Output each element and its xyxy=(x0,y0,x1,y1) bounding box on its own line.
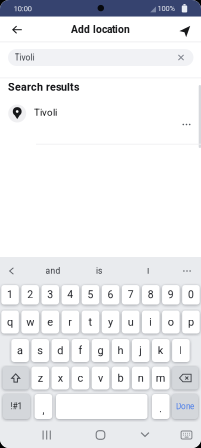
button[interactable] xyxy=(178,118,194,130)
button[interactable]: 4 xyxy=(62,285,79,305)
staticText: Done xyxy=(176,402,194,411)
staticText: 3 xyxy=(47,289,53,301)
button[interactable]: c xyxy=(72,366,89,389)
button[interactable]: 9 xyxy=(162,285,180,305)
staticText: p xyxy=(188,316,194,328)
staticText: x xyxy=(58,372,63,384)
staticText: 4 xyxy=(67,289,73,301)
button[interactable]: 0 xyxy=(182,285,200,305)
staticText: y xyxy=(108,316,113,328)
staticText: !#1 xyxy=(10,402,22,411)
staticText: b xyxy=(118,372,124,384)
button[interactable]: m xyxy=(152,366,170,389)
staticText: Search results xyxy=(8,81,79,93)
staticText: u xyxy=(128,316,134,328)
button[interactable]: h xyxy=(112,339,129,362)
button[interactable]: r xyxy=(62,310,79,333)
staticText: Add location xyxy=(71,23,130,35)
staticText: i xyxy=(149,316,152,328)
staticText: e xyxy=(47,316,53,328)
staticText: Tivoli xyxy=(14,52,34,62)
button[interactable] xyxy=(140,432,149,438)
button[interactable] xyxy=(96,431,105,439)
button[interactable]: o xyxy=(162,310,180,333)
button[interactable]: w xyxy=(21,310,39,333)
button[interactable]: e xyxy=(41,310,59,333)
button[interactable]: l xyxy=(172,339,190,362)
staticText: 7 xyxy=(128,289,134,301)
button[interactable]: 6 xyxy=(102,285,119,305)
button[interactable]: z xyxy=(31,366,49,389)
staticText: 1 xyxy=(7,289,13,301)
button[interactable] xyxy=(181,24,192,36)
staticText: 10:00 xyxy=(13,4,31,13)
staticText: c xyxy=(77,372,83,384)
button[interactable] xyxy=(177,53,185,61)
button[interactable]: b xyxy=(112,366,129,389)
button[interactable]: v xyxy=(92,366,109,389)
staticText: k xyxy=(158,344,164,357)
button[interactable]: k xyxy=(152,339,170,362)
staticText: r xyxy=(68,316,72,328)
button[interactable] xyxy=(0,96,201,144)
staticText: , xyxy=(42,403,44,416)
button[interactable]: f xyxy=(72,339,89,362)
button[interactable]: n xyxy=(132,366,149,389)
button[interactable] xyxy=(42,430,51,439)
button[interactable]: Done xyxy=(172,394,198,419)
staticText: s xyxy=(37,344,43,357)
button[interactable]: t xyxy=(82,310,99,333)
button[interactable] xyxy=(8,267,15,275)
staticText: 8 xyxy=(148,289,154,301)
staticText: and xyxy=(45,266,60,276)
button[interactable]: u xyxy=(122,310,139,333)
staticText: . xyxy=(159,402,162,415)
staticText: g xyxy=(97,344,103,357)
staticText: Tivoli xyxy=(34,107,57,118)
button[interactable] xyxy=(181,431,192,439)
button[interactable]: 2 xyxy=(21,285,39,305)
staticText: n xyxy=(138,372,144,384)
staticText: o xyxy=(168,316,174,328)
button[interactable]: a xyxy=(11,339,29,362)
button[interactable]: 8 xyxy=(142,285,160,305)
button[interactable] xyxy=(56,394,147,419)
staticText: 6 xyxy=(107,289,113,301)
staticText: 100% xyxy=(157,4,174,13)
button[interactable]: p xyxy=(182,310,200,333)
button[interactable] xyxy=(172,366,198,389)
button[interactable]: !#1 xyxy=(3,394,30,419)
button[interactable] xyxy=(179,265,195,277)
staticText: l xyxy=(179,344,182,357)
button[interactable]: x xyxy=(51,366,69,389)
staticText: 9 xyxy=(168,289,174,301)
staticText: is xyxy=(96,266,102,276)
button[interactable]: g xyxy=(92,339,109,362)
button[interactable] xyxy=(2,366,29,389)
staticText: 0 xyxy=(188,289,194,301)
staticText: h xyxy=(118,344,124,357)
button[interactable]: and xyxy=(33,261,73,281)
staticText: q xyxy=(7,316,13,328)
button[interactable]: , xyxy=(35,394,52,419)
button[interactable]: i xyxy=(142,310,160,333)
staticText: t xyxy=(88,316,92,328)
button[interactable]: Tivoli xyxy=(8,49,193,66)
button[interactable]: s xyxy=(31,339,49,362)
button[interactable]: 1 xyxy=(1,285,19,305)
button[interactable]: is xyxy=(79,261,119,281)
staticText: d xyxy=(57,344,63,357)
button[interactable]: 5 xyxy=(82,285,99,305)
button[interactable]: y xyxy=(102,310,119,333)
staticText: v xyxy=(98,372,103,384)
button[interactable]: . xyxy=(152,394,169,419)
button[interactable]: 3 xyxy=(41,285,59,305)
button[interactable]: d xyxy=(51,339,69,362)
staticText: j xyxy=(139,344,142,357)
button[interactable] xyxy=(12,25,22,34)
button[interactable]: I xyxy=(128,261,168,281)
staticText: a xyxy=(17,344,23,357)
button[interactable]: j xyxy=(132,339,149,362)
button[interactable]: q xyxy=(1,310,19,333)
button[interactable]: 7 xyxy=(122,285,139,305)
